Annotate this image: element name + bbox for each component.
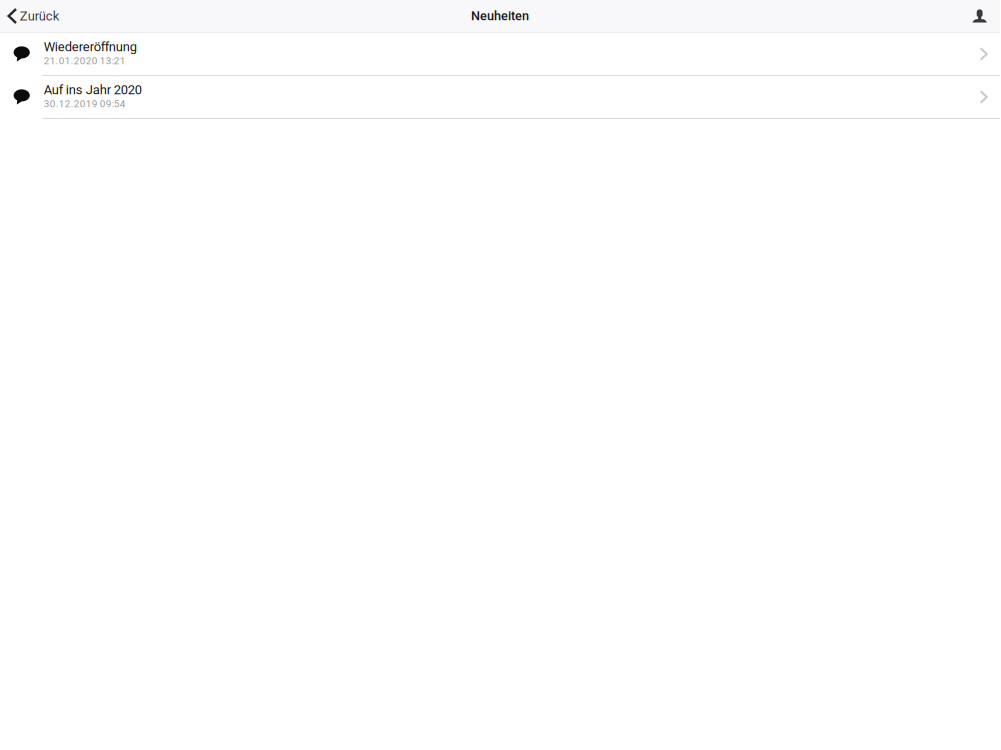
button[interactable]: Wiedereröffnung xyxy=(0,33,1000,76)
staticText: Wiedereröffnung xyxy=(44,39,137,54)
button[interactable]: Auf ins Jahr 2020 xyxy=(0,76,1000,119)
button[interactable]: Profil xyxy=(962,0,1000,32)
button[interactable]: Zurück xyxy=(0,0,70,32)
staticText: Neuheiten xyxy=(471,9,529,23)
staticText: 21.01.2020 13:21 xyxy=(44,55,126,67)
staticText: Auf ins Jahr 2020 xyxy=(44,82,142,97)
staticText: 30.12.2019 09:54 xyxy=(44,98,126,110)
staticText: Zurück xyxy=(20,8,60,24)
